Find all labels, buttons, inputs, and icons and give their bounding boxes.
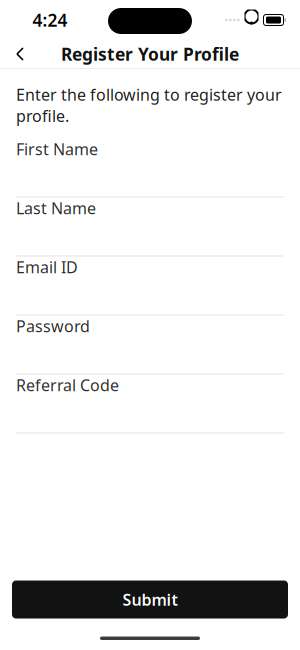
- button[interactable]: Last Name: [16, 197, 284, 256]
- staticText: 4:24: [32, 8, 67, 31]
- staticText: Email ID: [16, 256, 78, 278]
- staticText: Enter the following to register your pro…: [16, 84, 282, 126]
- button[interactable]: Back: [0, 40, 40, 68]
- staticText: Password: [16, 315, 90, 337]
- staticText: Last Name: [16, 197, 96, 219]
- button[interactable]: First Name: [16, 138, 284, 197]
- staticText: Referral Code: [16, 374, 119, 396]
- button[interactable]: Password: [16, 315, 284, 374]
- staticText: Register Your Profile: [61, 42, 239, 65]
- staticText: First Name: [16, 138, 98, 160]
- button[interactable]: Email ID: [16, 256, 284, 315]
- staticText: Submit: [122, 589, 177, 610]
- button[interactable]: Referral Code: [16, 374, 284, 433]
- button[interactable]: Submit: [12, 580, 288, 618]
